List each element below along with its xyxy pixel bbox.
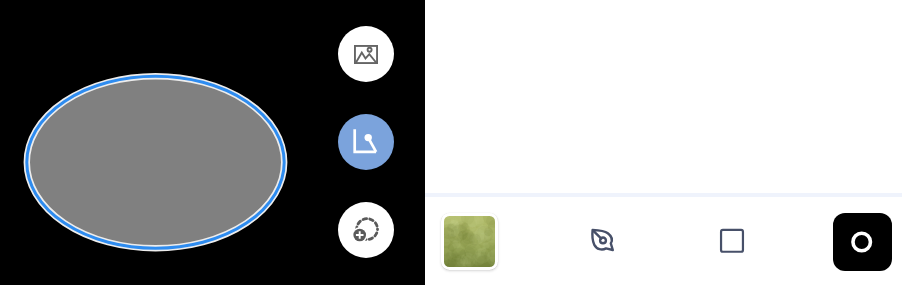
button[interactable]: Shape	[338, 114, 394, 170]
button[interactable]: Pen	[578, 216, 626, 264]
button[interactable]: Rectangle	[708, 216, 756, 264]
button[interactable]: Gallery	[441, 213, 498, 270]
button[interactable]: Image	[338, 26, 394, 82]
button[interactable]: Capture	[833, 213, 892, 271]
button[interactable]: Add selection	[338, 202, 394, 258]
